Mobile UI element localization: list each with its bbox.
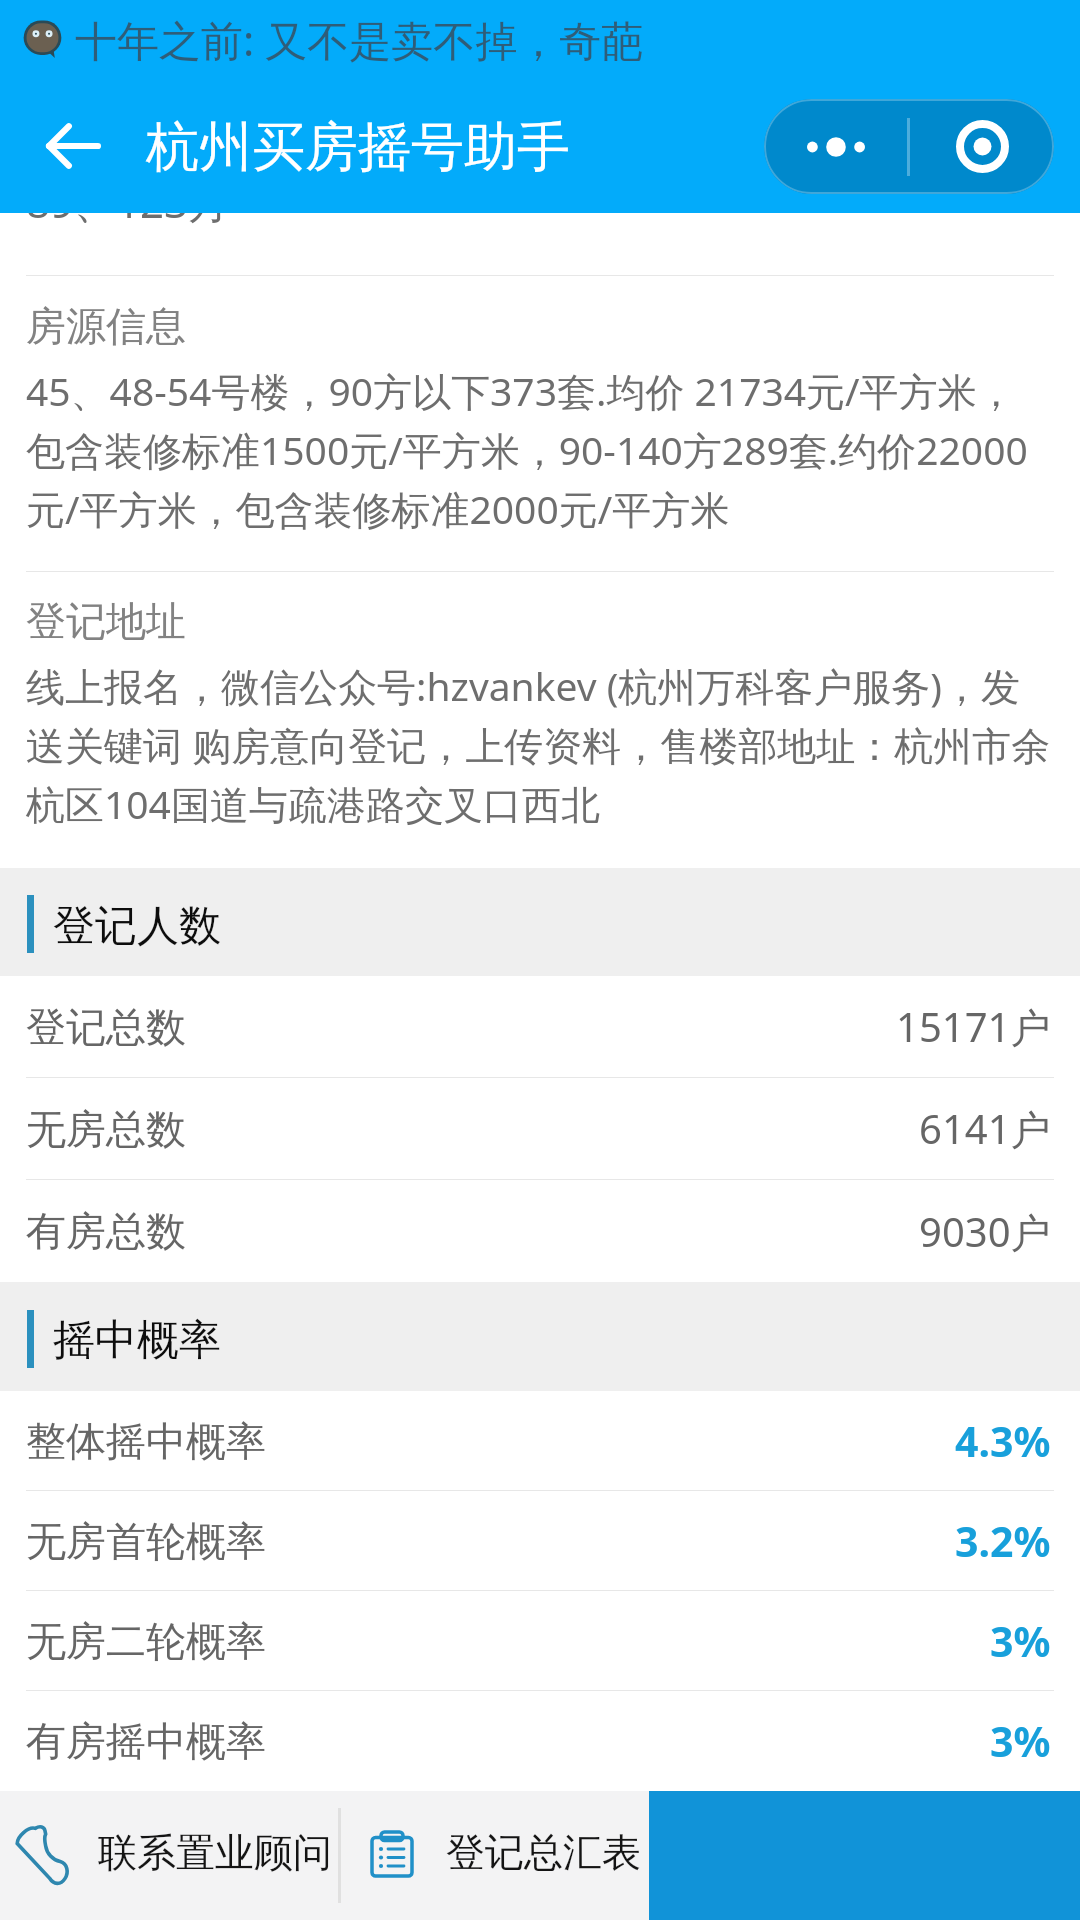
staticText: 无房首轮概率 (26, 1516, 266, 1566)
button[interactable]: 有房摇中概率 (0, 1691, 1080, 1791)
staticText: 4.3% (955, 1413, 1051, 1469)
button[interactable]: 登记地址 (0, 572, 1080, 830)
staticText: 6141户 (919, 1101, 1051, 1156)
button[interactable]: 联系置业顾问 (0, 1791, 338, 1920)
button[interactable]: 房源信息 (0, 276, 1080, 571)
staticText: 无房总数 (26, 1104, 186, 1154)
staticText: 登记人数 (53, 900, 221, 953)
staticText: 3% (990, 1713, 1051, 1769)
staticText: 摇中概率 (53, 1314, 221, 1367)
button[interactable]: 登记总汇表 (341, 1791, 649, 1920)
button[interactable]: 十年之前: 又不是卖不掉，奇葩 (0, 0, 1080, 79)
staticText: 有房摇中概率 (26, 1716, 266, 1766)
button[interactable]: Back (37, 110, 109, 182)
staticText: 登记总数 (26, 1002, 186, 1052)
button[interactable]: 有房总数 (0, 1180, 1080, 1282)
button[interactable]: 无房首轮概率 (0, 1491, 1080, 1591)
staticText: 杭州买房摇号助手 (146, 114, 570, 181)
button[interactable]: Close mini program (910, 99, 1054, 194)
staticText: 联系置业顾问 (98, 1828, 332, 1877)
staticText: 有房总数 (26, 1206, 186, 1256)
button[interactable]: More options (764, 99, 907, 194)
staticText: 3% (990, 1613, 1051, 1669)
staticText: 整体摇中概率 (26, 1416, 266, 1466)
staticText: 十年之前: 又不是卖不掉，奇葩 (75, 11, 644, 68)
staticText: 线上报名，微信公众号:hzvankev (杭州万科客户服务)，发送关键词 购房意… (26, 659, 1054, 830)
button[interactable]: 无房二轮概率 (0, 1591, 1080, 1691)
button[interactable]: 无房总数 (0, 1078, 1080, 1180)
staticText: 15171户 (896, 999, 1051, 1054)
staticText: 45、48-54号楼，90方以下373套.均价 21734元/平方米，包含装修标… (26, 364, 1054, 535)
button[interactable]: 整体摇中概率 (0, 1391, 1080, 1491)
staticText: 登记地址 (26, 596, 186, 646)
button[interactable]: 登记总数 (0, 976, 1080, 1078)
staticText: 无房二轮概率 (26, 1616, 266, 1666)
staticText: 9030户 (919, 1204, 1051, 1259)
staticText: 房源信息 (26, 301, 186, 351)
staticText: 89、123方 (26, 213, 231, 230)
staticText: 登记总汇表 (446, 1828, 641, 1877)
staticText: 3.2% (955, 1513, 1051, 1569)
